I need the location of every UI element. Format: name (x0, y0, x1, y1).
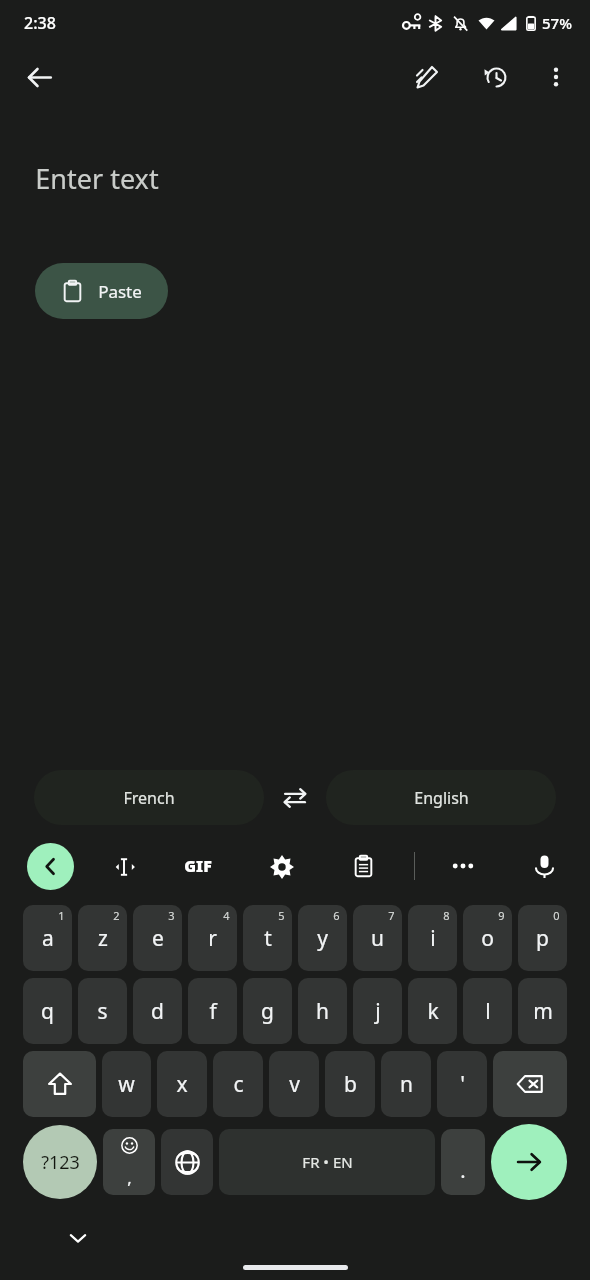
button[interactable]: i (408, 905, 457, 971)
button[interactable]: French (34, 770, 264, 825)
button[interactable]: m (518, 978, 567, 1044)
staticText: 3 (168, 908, 175, 923)
staticText: 0 (553, 908, 560, 923)
button[interactable]: Collapse toolbar (27, 843, 74, 890)
staticText: 8 (443, 908, 450, 923)
staticText: x (176, 1070, 188, 1099)
button[interactable]: Text editing (100, 843, 147, 890)
staticText: . (460, 1157, 466, 1184)
staticText: i (430, 924, 436, 953)
staticText: r (208, 924, 217, 953)
button[interactable]: Enter (491, 1124, 567, 1200)
button[interactable]: FR • EN (219, 1129, 435, 1195)
button[interactable]: Change language (161, 1129, 213, 1195)
staticText: q (41, 997, 54, 1026)
staticText: 57% (542, 13, 572, 33)
staticText: French (123, 787, 175, 809)
staticText: 5 (278, 908, 285, 923)
button[interactable]: p (518, 905, 567, 971)
staticText: 2:38 (24, 12, 56, 34)
button[interactable]: Hide keyboard (58, 1218, 98, 1258)
button[interactable]: q (23, 978, 72, 1044)
button[interactable]: r (188, 905, 237, 971)
button[interactable]: Clipboard (340, 843, 387, 890)
button[interactable]: w (102, 1051, 151, 1117)
staticText: e (152, 924, 164, 953)
staticText: 6 (333, 908, 340, 923)
button[interactable]: u (353, 905, 402, 971)
staticText: a (42, 924, 54, 953)
staticText: g (261, 997, 274, 1026)
button[interactable]: Emoji (103, 1129, 155, 1195)
staticText: j (375, 997, 381, 1026)
button[interactable]: k (408, 978, 457, 1044)
staticText: 1 (58, 908, 65, 923)
staticText: GIF (184, 855, 212, 877)
button[interactable]: z (78, 905, 127, 971)
staticText: Paste (98, 280, 142, 303)
staticText: ?123 (41, 1150, 80, 1175)
button[interactable]: Handwriting (402, 53, 450, 101)
button[interactable]: x (157, 1051, 207, 1117)
staticText: k (427, 997, 439, 1026)
staticText: l (485, 997, 491, 1026)
staticText: , (127, 1166, 132, 1189)
staticText: m (533, 997, 553, 1026)
button[interactable]: ?123 (23, 1125, 97, 1199)
button[interactable]: o (463, 905, 512, 971)
staticText: b (344, 1070, 357, 1099)
button[interactable]: . (441, 1129, 485, 1195)
button[interactable]: d (133, 978, 182, 1044)
button[interactable]: Swap languages (264, 773, 326, 823)
staticText: s (97, 997, 108, 1026)
staticText: 7 (388, 908, 395, 923)
staticText: h (316, 997, 329, 1026)
button[interactable]: Shift (23, 1051, 96, 1117)
staticText: v (289, 1070, 300, 1099)
staticText: p (536, 924, 549, 953)
staticText: d (151, 997, 164, 1026)
staticText: f (209, 997, 217, 1026)
button[interactable]: History (472, 53, 520, 101)
button[interactable]: ' (437, 1051, 487, 1117)
button[interactable]: l (463, 978, 512, 1044)
staticText: y (317, 924, 328, 953)
button[interactable]: Voice input (521, 843, 568, 890)
button[interactable]: GIF (173, 841, 223, 891)
button[interactable]: y (298, 905, 347, 971)
button[interactable]: Backspace (493, 1051, 567, 1117)
staticText: w (118, 1070, 135, 1099)
button[interactable]: a (23, 905, 72, 971)
staticText: 2 (113, 908, 120, 923)
staticText: c (233, 1070, 244, 1099)
button[interactable]: More options (532, 53, 580, 101)
staticText: o (481, 924, 494, 953)
staticText: z (98, 924, 108, 953)
button[interactable]: n (381, 1051, 431, 1117)
button[interactable]: e (133, 905, 182, 971)
button[interactable]: More (437, 840, 489, 892)
button[interactable]: Settings (258, 843, 305, 890)
staticText: 4 (223, 908, 230, 923)
button[interactable]: Paste (35, 263, 168, 319)
staticText: FR • EN (302, 1152, 353, 1172)
button[interactable]: h (298, 978, 347, 1044)
button[interactable]: t (243, 905, 292, 971)
button[interactable]: English (326, 770, 556, 825)
staticText: u (371, 924, 384, 953)
button[interactable]: j (353, 978, 402, 1044)
button[interactable]: Back (15, 53, 63, 101)
button[interactable]: f (188, 978, 237, 1044)
staticText: ' (460, 1070, 465, 1099)
staticText: n (400, 1070, 413, 1099)
staticText: English (414, 787, 469, 809)
staticText: 9 (498, 908, 505, 923)
button[interactable]: c (213, 1051, 263, 1117)
staticText: Enter text (35, 160, 159, 197)
button[interactable]: s (78, 978, 127, 1044)
button[interactable]: b (325, 1051, 375, 1117)
staticText: t (264, 924, 272, 953)
button[interactable]: g (243, 978, 292, 1044)
button[interactable]: v (269, 1051, 319, 1117)
